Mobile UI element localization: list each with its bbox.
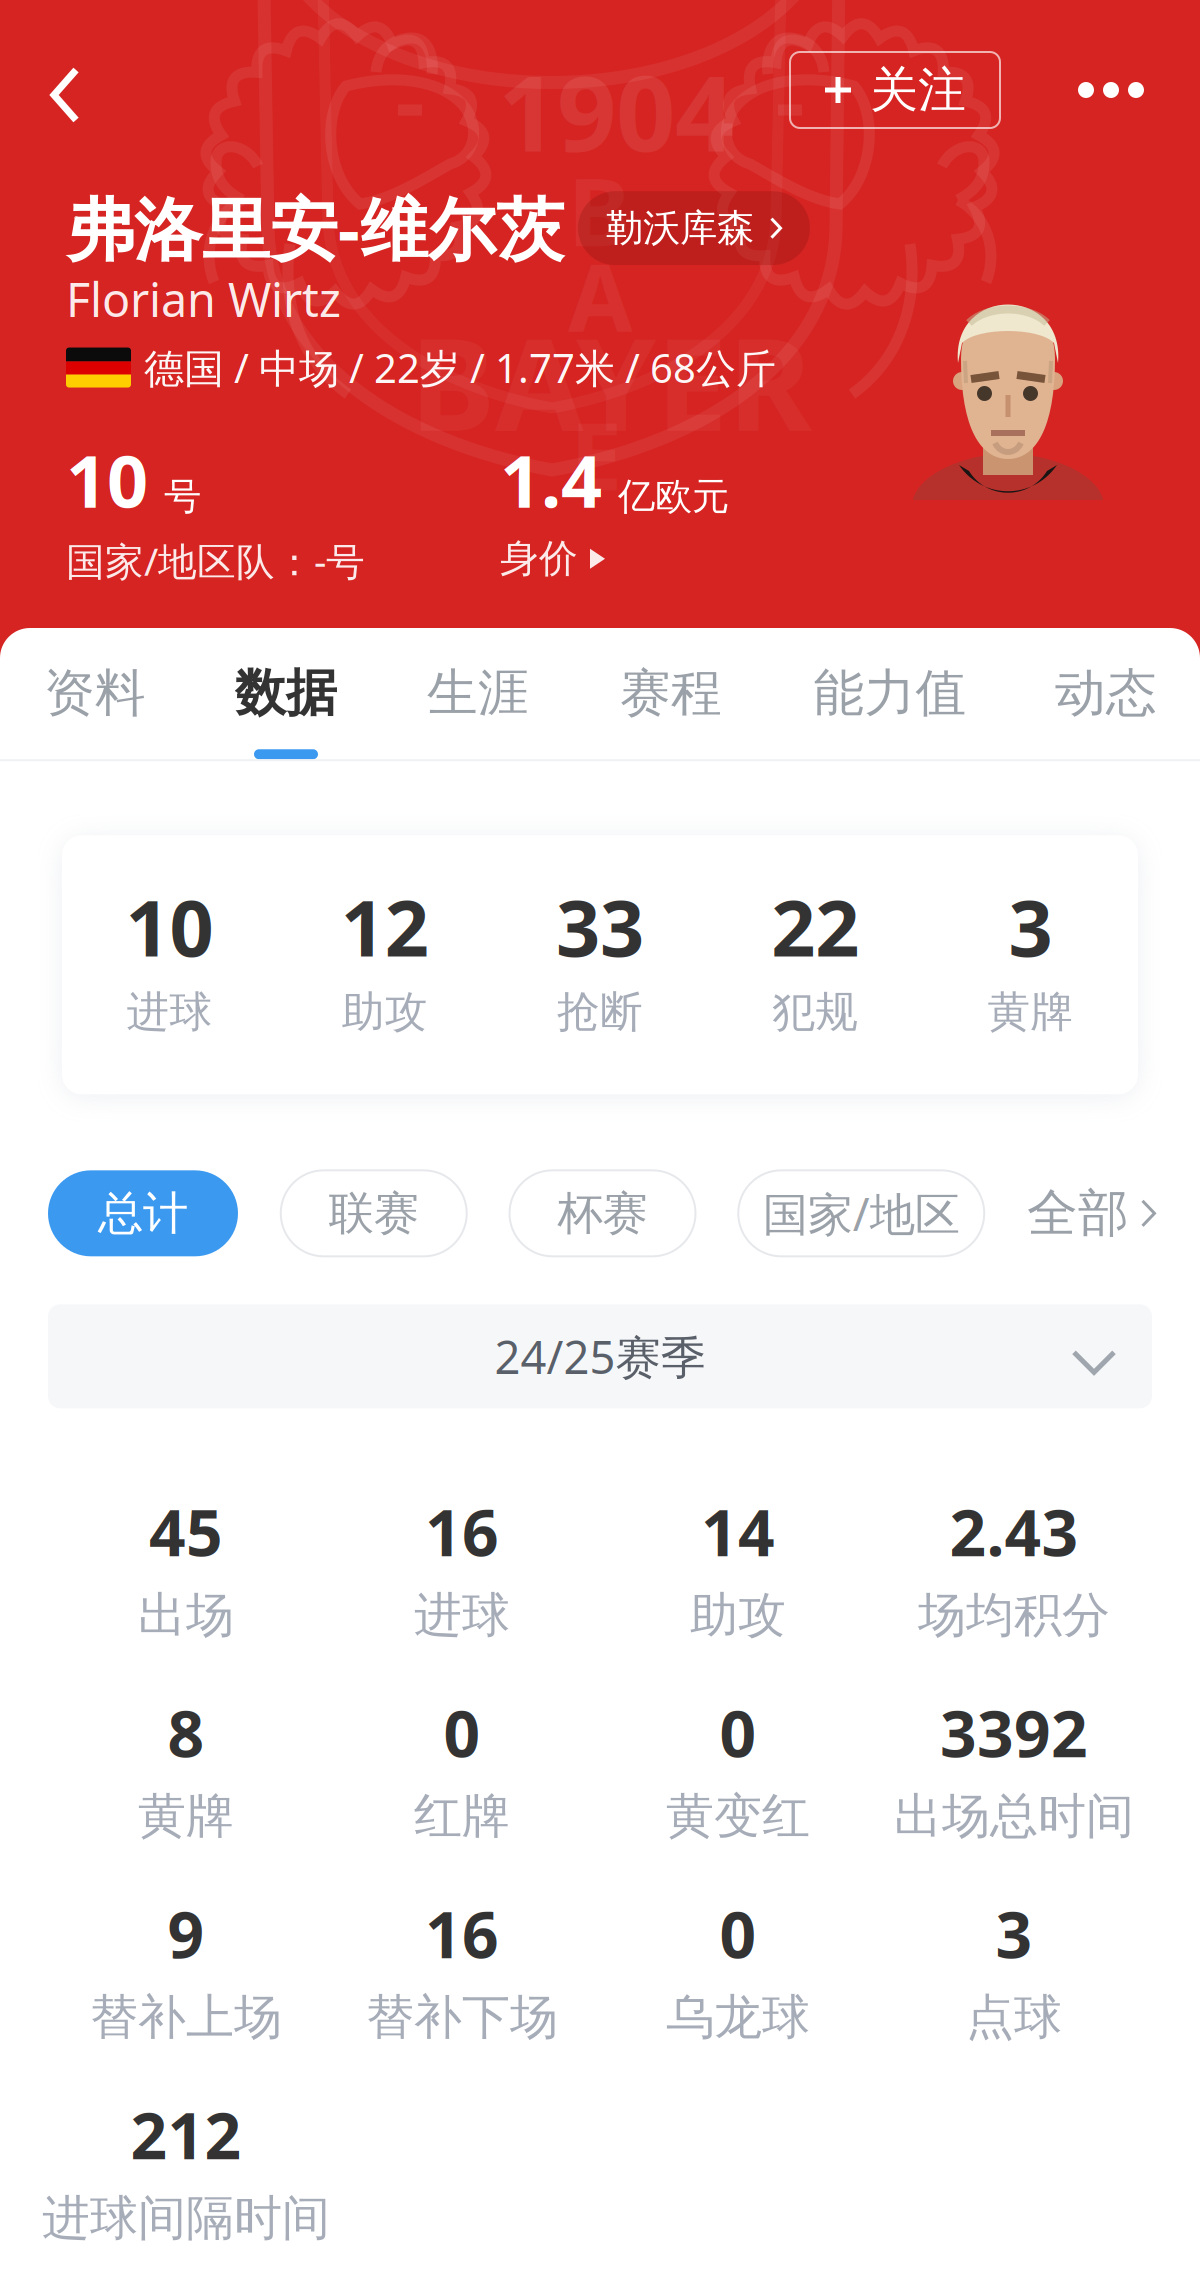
button[interactable]: 资料: [0, 662, 190, 759]
staticText: 进球间隔时间: [42, 2189, 330, 2248]
staticText: 出场总时间: [894, 1787, 1134, 1846]
staticText: 1904: [498, 42, 734, 180]
staticText: 动态: [1055, 662, 1157, 724]
staticText: 国家/地区: [763, 1183, 960, 1243]
staticText: 黄牌: [138, 1787, 234, 1846]
staticText: 1.4: [500, 432, 602, 528]
staticText: 黄变红: [666, 1787, 810, 1846]
staticText: 12: [341, 875, 429, 978]
staticText: E: [570, 392, 622, 516]
staticText: 24/25赛季: [494, 1326, 705, 1386]
button[interactable]: 动态: [1012, 662, 1200, 759]
staticText: 进球: [127, 986, 213, 1038]
button[interactable]: 能力值: [768, 662, 1012, 759]
staticText: 场均积分: [918, 1586, 1110, 1645]
staticText: 替补下场: [366, 1988, 558, 2047]
staticText: 能力值: [813, 662, 966, 724]
staticText: 全部: [1027, 1182, 1129, 1244]
button[interactable]: 杯赛: [509, 1170, 695, 1256]
staticText: 22: [771, 875, 859, 978]
staticText: 点球: [966, 1988, 1062, 2047]
staticText: 8: [167, 1690, 204, 1775]
staticText: 2.43: [949, 1489, 1078, 1574]
staticText: 国家/地区队：-号: [66, 535, 365, 586]
staticText: 乌龙球: [666, 1988, 810, 2047]
button[interactable]: 国家/地区: [738, 1170, 984, 1256]
staticText: 进球: [414, 1586, 510, 1645]
staticText: 16: [425, 1489, 499, 1574]
button[interactable]: 勒沃库森: [578, 191, 810, 265]
staticText: 0: [443, 1690, 480, 1775]
button[interactable]: 赛程: [574, 662, 768, 759]
staticText: 10: [126, 875, 214, 978]
staticText: 16: [425, 1891, 499, 1976]
staticText: 亿欧元: [618, 474, 729, 520]
button[interactable]: 关注: [790, 52, 1000, 128]
staticText: 黄牌: [987, 986, 1073, 1038]
staticText: 总计: [98, 1185, 188, 1241]
staticText: 3: [1008, 875, 1052, 978]
button[interactable]: More: [1054, 52, 1168, 128]
staticText: 弗洛里安-维尔茨: [66, 183, 564, 273]
staticText: A: [568, 234, 633, 358]
button[interactable]: 24/25赛季: [48, 1304, 1152, 1408]
staticText: 14: [701, 1489, 775, 1574]
staticText: 45: [149, 1489, 223, 1574]
staticText: 出场: [138, 1586, 234, 1645]
staticText: 联赛: [329, 1185, 419, 1241]
staticText: 抢断: [557, 986, 643, 1038]
staticText: 助攻: [342, 986, 428, 1038]
staticText: 0: [719, 1891, 756, 1976]
button[interactable]: 生涯: [382, 662, 574, 759]
staticText: 生涯: [427, 662, 529, 724]
staticText: 助攻: [690, 1586, 786, 1645]
staticText: 9: [167, 1891, 204, 1976]
staticText: BAYER: [410, 296, 812, 466]
staticText: B: [568, 148, 630, 272]
staticText: 红牌: [414, 1787, 510, 1846]
staticText: 勒沃库森: [606, 205, 754, 251]
staticText: 杯赛: [557, 1185, 647, 1241]
staticText: 身价: [500, 535, 578, 582]
staticText: 德国 / 中场 / 22岁 / 1.77米 / 68公斤: [144, 341, 776, 394]
staticText: 3: [995, 1891, 1032, 1976]
staticText: 0: [719, 1690, 756, 1775]
button[interactable]: Back: [28, 46, 102, 144]
staticText: 33: [556, 875, 644, 978]
staticText: 赛程: [620, 662, 722, 724]
button[interactable]: 身价: [500, 535, 605, 582]
staticText: 10: [66, 432, 148, 528]
staticText: 号: [164, 474, 201, 520]
staticText: 替补上场: [90, 1988, 282, 2047]
button[interactable]: 全部: [1027, 1170, 1156, 1256]
button[interactable]: 联赛: [281, 1170, 467, 1256]
staticText: 犯规: [772, 986, 858, 1038]
staticText: Florian Wirtz: [66, 268, 341, 330]
staticText: 关注: [870, 60, 966, 119]
staticText: 资料: [44, 662, 146, 724]
staticText: 3392: [940, 1690, 1088, 1775]
staticText: 数据: [235, 662, 337, 724]
staticText: 212: [130, 2092, 241, 2177]
button[interactable]: 数据: [190, 662, 382, 759]
button[interactable]: 总计: [48, 1170, 238, 1256]
